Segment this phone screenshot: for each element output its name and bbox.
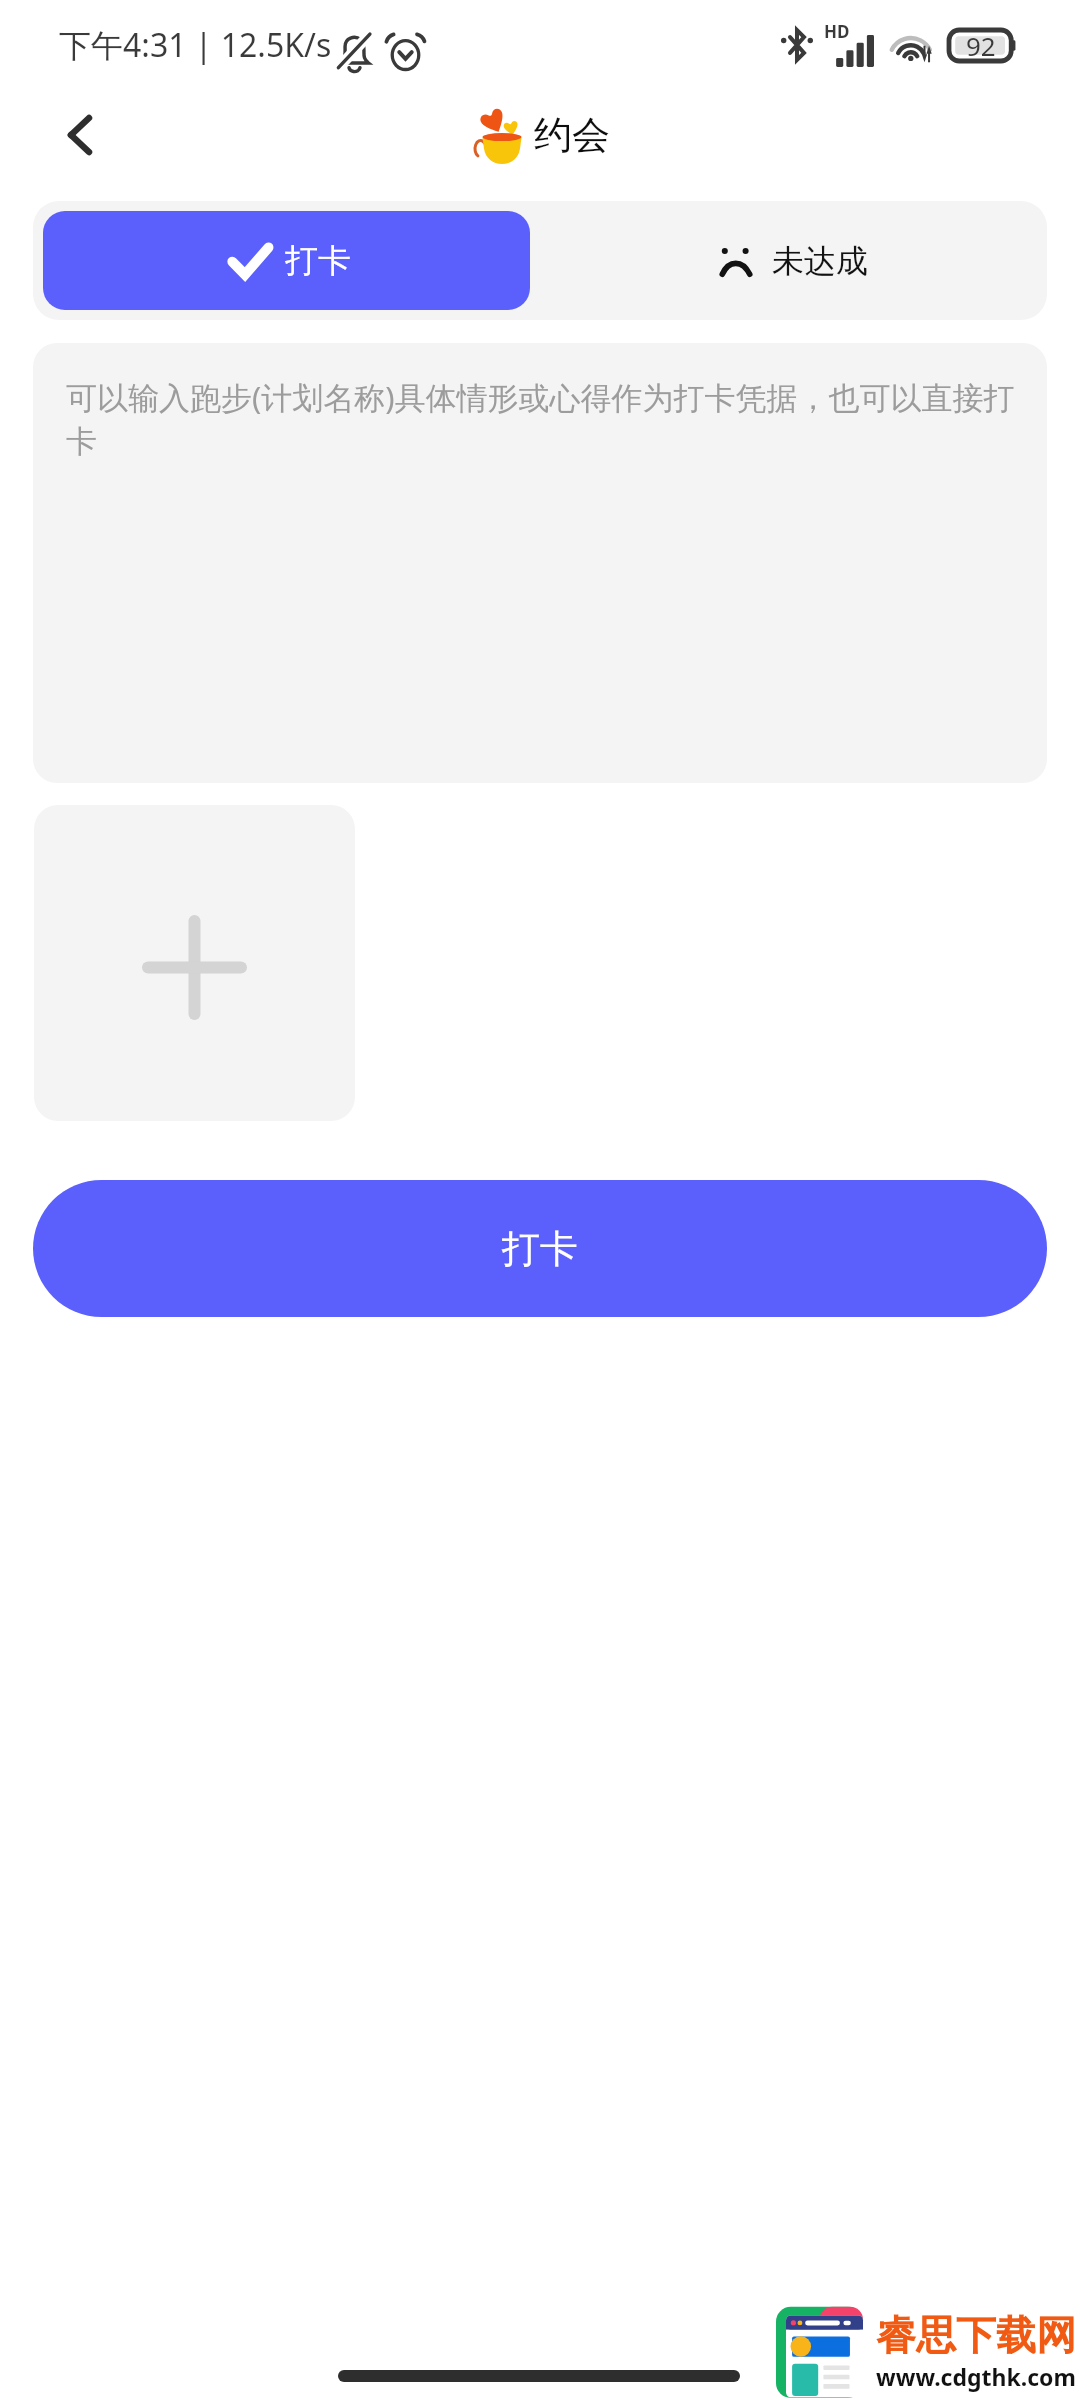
staticText: www.cdgthk.com xyxy=(876,2361,1076,2392)
staticText: 睿思下载网 xyxy=(876,2310,1076,2360)
button[interactable]: 未达成 xyxy=(540,201,1047,320)
staticText: 未达成 xyxy=(772,241,868,281)
staticText: 可以输入跑步(计划名称)具体情形或心得作为打卡凭据，也可以直接打卡 xyxy=(66,376,1031,461)
button[interactable]: 打卡 xyxy=(43,211,530,310)
button[interactable]: 可以输入跑步(计划名称)具体情形或心得作为打卡凭据，也可以直接打卡 xyxy=(33,343,1047,783)
staticText: 下午4:31 | 12.5K/s xyxy=(59,23,332,67)
staticText: HD xyxy=(824,20,850,43)
button[interactable]: Back xyxy=(28,95,108,175)
staticText: 打卡 xyxy=(285,240,351,282)
staticText: 92 xyxy=(966,28,996,63)
button[interactable]: Add photo xyxy=(34,805,355,1121)
button[interactable]: 打卡 xyxy=(33,1180,1047,1317)
staticText: 约会 xyxy=(534,111,610,159)
staticText: 打卡 xyxy=(502,1225,578,1273)
